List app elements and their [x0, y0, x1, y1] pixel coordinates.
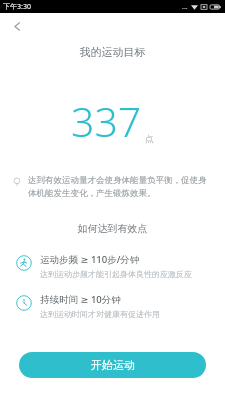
staticText: 下午3:30 [3, 2, 31, 12]
staticText: 开始运动 [91, 358, 135, 372]
staticText: 达到运动时间才对健康有促进作用 [40, 309, 160, 319]
button[interactable]: Back [6, 15, 28, 37]
staticText: ... [182, 2, 188, 12]
staticText: 达到运动步频才能引起身体良性的应激反应 [40, 269, 192, 279]
staticText: 我的运动目标 [0, 45, 225, 59]
staticText: 持续时间 ≥ 10分钟 [40, 293, 121, 306]
button[interactable]: 开始运动 [19, 352, 206, 378]
button[interactable]: 持续时间 ≥ 10分钟 [0, 293, 225, 319]
staticText: 运动步频 ≥ 110步/分钟 [40, 253, 140, 266]
button[interactable]: 运动步频 ≥ 110步/分钟 [0, 253, 225, 279]
staticText: 点 [145, 133, 154, 144]
staticText: 如何达到有效点 [0, 222, 225, 235]
staticText: 337 [71, 93, 142, 149]
staticText: 达到有效运动量才会使身体能量负平衡，促使身体机能发生变化，产生锻炼效果。 [28, 175, 209, 198]
